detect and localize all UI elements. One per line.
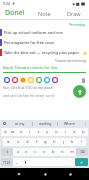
- button[interactable]: h: [50, 138, 59, 146]
- button[interactable]: i: [61, 128, 70, 136]
- button[interactable]: e: [17, 128, 25, 136]
- staticText: u: [55, 129, 58, 135]
- button[interactable]: .: [66, 158, 75, 166]
- button[interactable]: Send: [73, 85, 86, 98]
- staticText: ,: [16, 159, 18, 165]
- button[interactable]: Emoji: [1, 120, 7, 127]
- staticText: g: [44, 139, 47, 145]
- staticText: Book Theatre tickets for Sat: [3, 65, 58, 71]
- staticText: Sun, Oct 8 at 7:00 at my place: [3, 85, 53, 90]
- staticText: k: [71, 139, 74, 145]
- button[interactable]: z: [13, 148, 22, 156]
- button[interactable]: Colour 0: [3, 76, 10, 83]
- staticText: Pick up school uniform and iron: [4, 30, 86, 35]
- staticText: n: [61, 149, 64, 155]
- staticText: e: [20, 129, 23, 135]
- button[interactable]: Back: [13, 168, 25, 180]
- button[interactable]: d: [23, 138, 32, 146]
- button[interactable]: w: [9, 128, 17, 136]
- staticText: Note: [38, 10, 51, 17]
- staticText: .: [70, 159, 72, 165]
- button[interactable]: s: [13, 138, 23, 146]
- staticText: Yesterday: [69, 22, 86, 27]
- button[interactable]: q: [1, 128, 9, 136]
- button[interactable]: Backspace: [76, 148, 88, 156]
- staticText: c: [34, 149, 37, 155]
- button[interactable]: at my: [7, 120, 32, 127]
- staticText: r: [29, 129, 31, 135]
- staticText: and can't be late for show, sorry!: [3, 93, 55, 98]
- button[interactable]: g: [41, 138, 50, 146]
- button[interactable]: Colour 6: [51, 76, 58, 83]
- button[interactable]: f: [32, 138, 41, 146]
- button[interactable]: a: [3, 138, 13, 146]
- staticText: a: [7, 139, 10, 145]
- button[interactable]: Colour 2: [19, 76, 26, 83]
- staticText: Where: [64, 121, 76, 126]
- staticText: Pet magazine for free issue: [4, 40, 86, 45]
- staticText: q: [4, 129, 7, 135]
- staticText: t: [38, 129, 40, 135]
- button[interactable]: x: [22, 148, 31, 156]
- staticText: s: [17, 139, 20, 145]
- button[interactable]: k: [68, 138, 77, 146]
- staticText: at my: [15, 121, 25, 126]
- button[interactable]: r: [25, 128, 34, 136]
- staticText: o: [73, 129, 76, 135]
- button[interactable]: waiting: [33, 120, 57, 127]
- button[interactable]: b: [49, 148, 58, 156]
- staticText: p: [82, 129, 85, 135]
- staticText: ⋮: [83, 121, 87, 126]
- button[interactable]: v: [40, 148, 49, 156]
- button[interactable]: Colour 5: [43, 76, 50, 83]
- staticText: z: [17, 149, 19, 155]
- button[interactable]: c: [31, 148, 40, 156]
- button[interactable]: t: [34, 128, 43, 136]
- button[interactable]: Pick up school uniform and iron: [0, 29, 89, 36]
- button[interactable]: Note: [29, 7, 59, 19]
- staticText: Draw: [67, 10, 81, 17]
- button[interactable]: u: [52, 128, 61, 136]
- button[interactable]: Home: [39, 168, 51, 180]
- staticText: x: [25, 149, 28, 155]
- button[interactable]: j: [59, 138, 68, 146]
- button[interactable]: Recents: [64, 168, 76, 180]
- button[interactable]: Draw: [59, 7, 89, 19]
- button[interactable]: Shift: [1, 148, 13, 156]
- staticText: Done!: [5, 8, 25, 18]
- button[interactable]: Pet magazine for free issue: [0, 39, 89, 46]
- button[interactable]: l: [77, 138, 86, 146]
- staticText: 9:24: [3, 1, 10, 6]
- staticText: y: [46, 129, 49, 135]
- staticText: Take the bins out — recycling plus paper: [4, 50, 83, 55]
- button[interactable]: ,: [13, 158, 21, 166]
- staticText: ⌫: [80, 150, 85, 154]
- button[interactable]: Enter: [75, 158, 88, 166]
- staticText: l: [81, 139, 83, 145]
- staticText: Tomorrow morning: [55, 58, 86, 63]
- staticText: ?123: [3, 160, 11, 165]
- staticText: j: [63, 139, 65, 145]
- button[interactable]: Symbols: [1, 158, 13, 166]
- button[interactable]: Delete: [80, 77, 86, 83]
- staticText: waiting: [39, 121, 52, 126]
- button[interactable]: Colour 1: [11, 76, 18, 83]
- button[interactable]: More: [82, 120, 88, 127]
- button[interactable]: m: [67, 148, 76, 156]
- button[interactable]: Colour 3: [27, 76, 34, 83]
- button[interactable]: Done!: [0, 7, 29, 19]
- button[interactable]: o: [70, 128, 79, 136]
- button[interactable]: Where: [58, 120, 82, 127]
- button[interactable]: Take the bins out — recycling plus paper: [0, 49, 89, 56]
- button[interactable]: n: [58, 148, 67, 156]
- staticText: w: [11, 129, 15, 135]
- staticText: b: [52, 149, 55, 155]
- button[interactable]: p: [79, 128, 88, 136]
- staticText: m: [70, 149, 74, 155]
- button[interactable]: y: [43, 128, 52, 136]
- button[interactable]: Voice input: [21, 158, 30, 166]
- button[interactable]: Colour 4: [35, 76, 42, 83]
- staticText: i: [65, 129, 67, 135]
- staticText: v: [43, 149, 46, 155]
